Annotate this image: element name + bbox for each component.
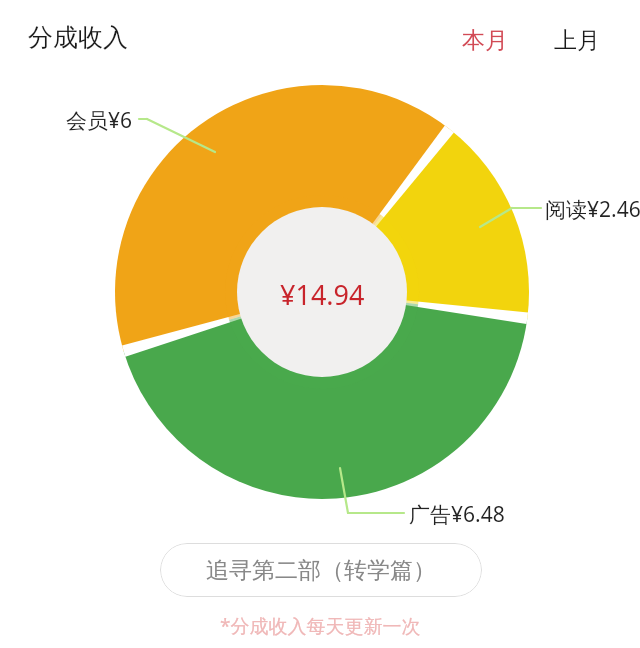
staticText: ¥14.94 bbox=[280, 276, 365, 313]
staticText: 分成收入 bbox=[28, 22, 128, 53]
staticText: 追寻第二部（转学篇） bbox=[206, 556, 436, 585]
button[interactable]: 本月 bbox=[462, 26, 508, 55]
staticText: 阅读¥2.46 bbox=[545, 195, 640, 224]
button[interactable]: 分成收入 bbox=[28, 22, 128, 53]
button[interactable]: 上月 bbox=[554, 26, 600, 55]
staticText: 广告¥6.48 bbox=[409, 500, 505, 529]
staticText: 本月 bbox=[462, 26, 508, 55]
staticText: *分成收入每天更新一次 bbox=[220, 613, 421, 639]
button[interactable]: 追寻第二部（转学篇） bbox=[160, 543, 482, 597]
staticText: 会员¥6 bbox=[66, 106, 133, 135]
staticText: 上月 bbox=[554, 26, 600, 55]
